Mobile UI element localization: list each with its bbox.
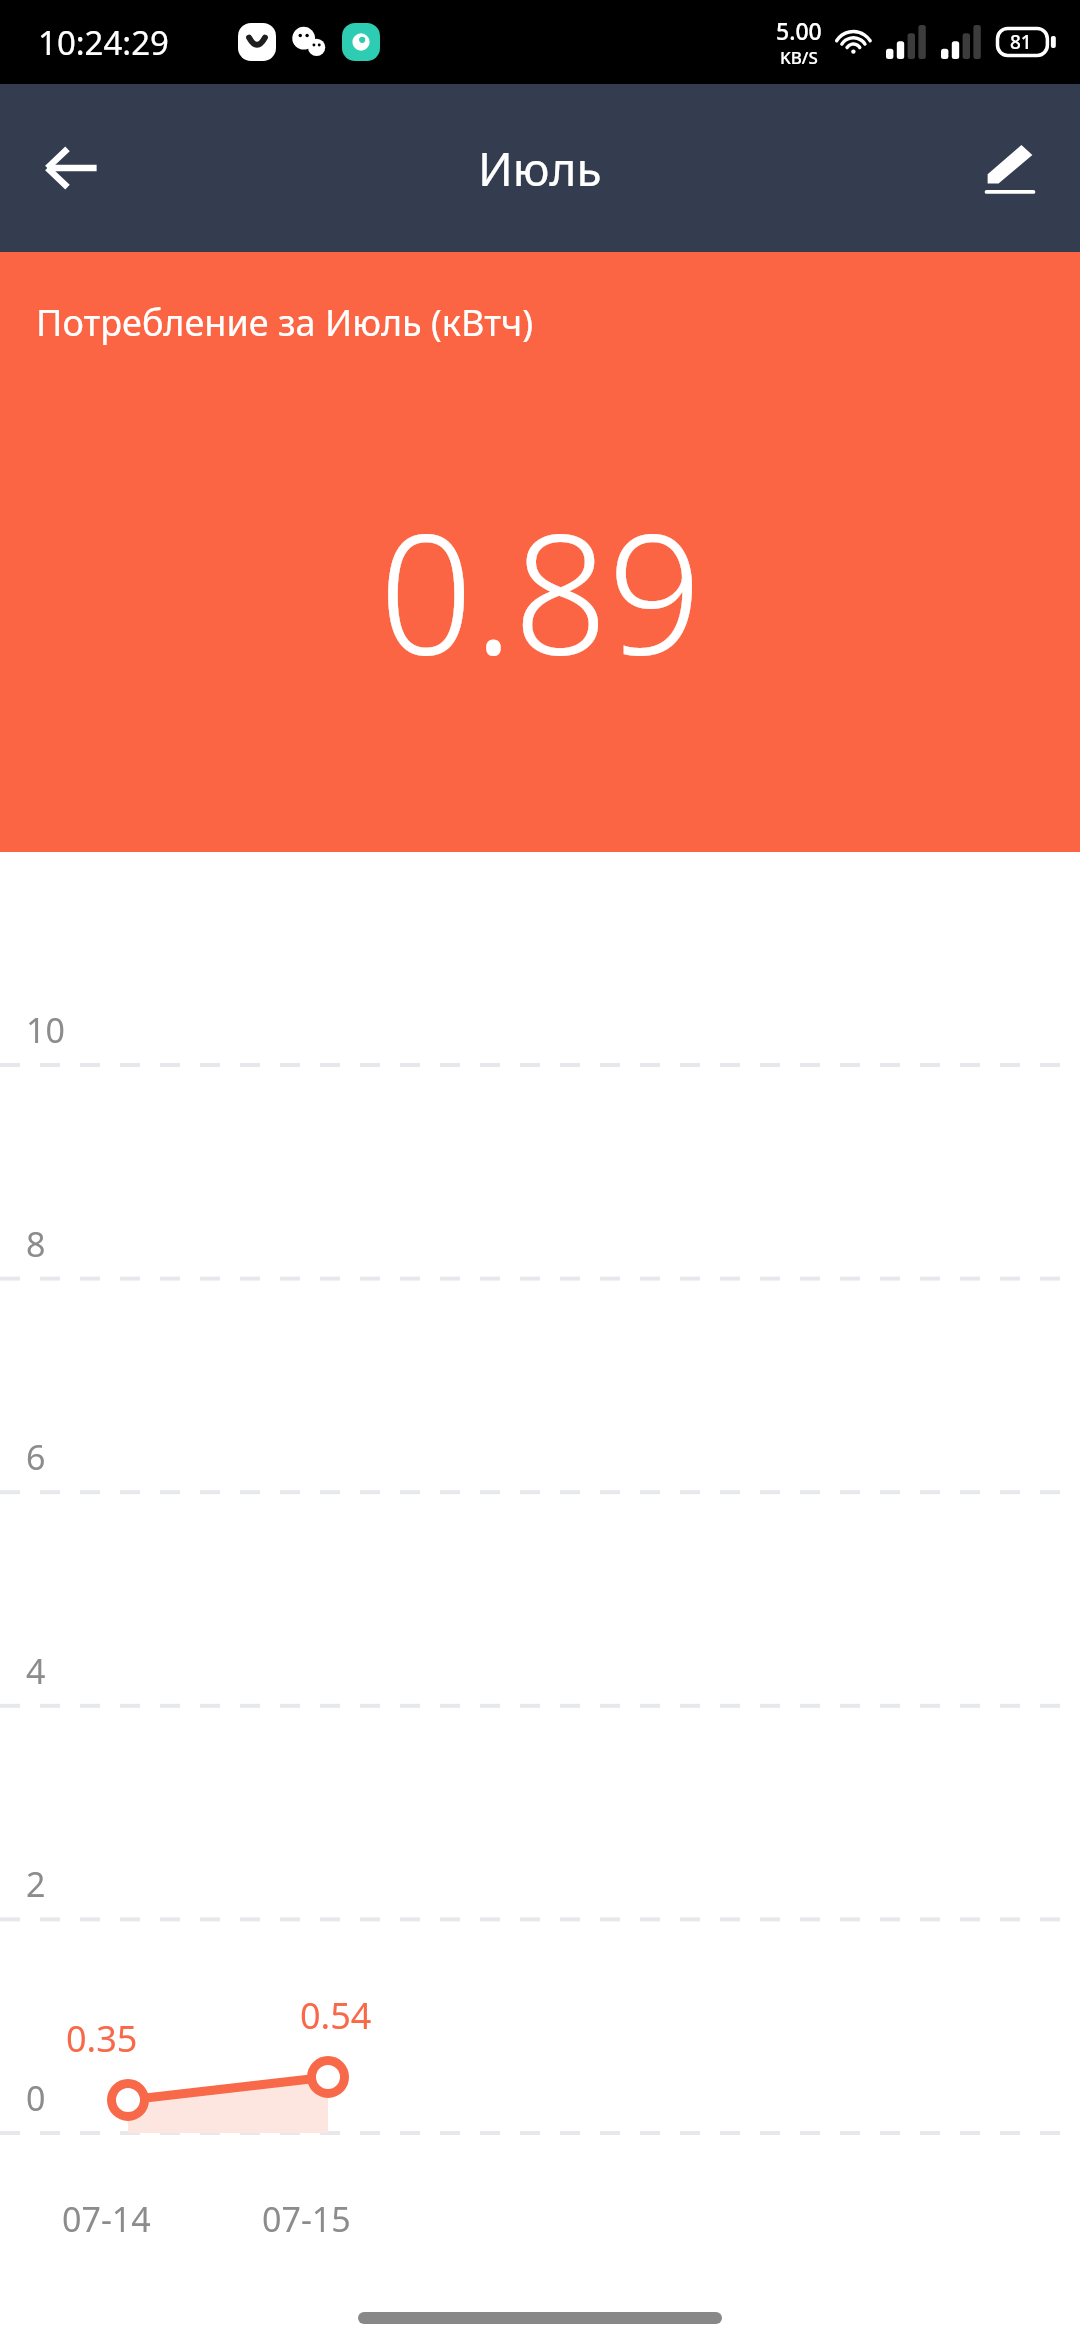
staticText: Потребление за Июль (кВтч) [36, 298, 534, 347]
staticText: 07-14 [62, 2196, 151, 2242]
button[interactable]: Back [24, 120, 120, 216]
staticText: 0.35 [66, 2014, 138, 2063]
staticText: 81 [1010, 29, 1032, 55]
staticText: KB/S [780, 46, 818, 69]
staticText: 0.54 [300, 1991, 372, 2040]
staticText: 6 [26, 1434, 46, 1480]
staticText: 10 [26, 1007, 65, 1053]
staticText: Июль [478, 137, 602, 200]
staticText: 0.89 [379, 478, 702, 703]
staticText: 07-15 [262, 2196, 351, 2242]
staticText: 4 [26, 1648, 46, 1694]
staticText: 10:24:29 [38, 20, 169, 65]
staticText: 8 [26, 1221, 46, 1267]
staticText: 5.00 [776, 15, 822, 46]
button[interactable]: Edit [962, 120, 1058, 216]
staticText: 2 [26, 1861, 46, 1907]
staticText: 0 [26, 2075, 46, 2121]
